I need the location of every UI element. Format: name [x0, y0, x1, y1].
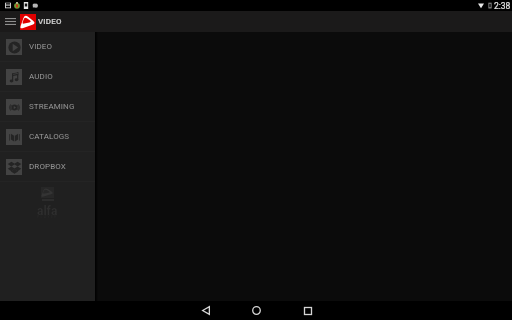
button[interactable]: CATALOGS	[0, 122, 95, 151]
staticText: DROPBOX	[29, 162, 66, 171]
staticText: 2:38	[494, 1, 511, 11]
staticText: VIDEO	[29, 42, 53, 51]
button[interactable]: Recent apps	[282, 301, 333, 320]
button[interactable]: STREAMING	[0, 92, 95, 121]
button[interactable]: Home	[231, 301, 282, 320]
button[interactable]: DROPBOX	[0, 152, 95, 181]
staticText: VIDEO	[38, 17, 62, 26]
button[interactable]: VIDEO	[0, 32, 95, 61]
staticText: AUDIO	[29, 72, 53, 81]
button[interactable]: Open navigation drawer	[0, 11, 20, 32]
staticText: alfa	[37, 204, 58, 218]
staticText: CATALOGS	[29, 132, 70, 141]
button[interactable]: Back	[180, 301, 231, 320]
staticText: STREAMING	[29, 102, 75, 111]
button[interactable]: AUDIO	[0, 62, 95, 91]
